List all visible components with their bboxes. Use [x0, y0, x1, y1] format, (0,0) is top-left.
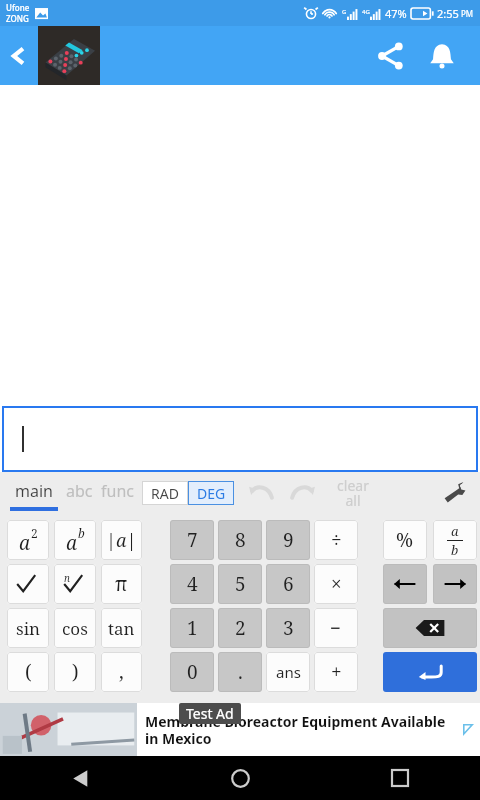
- staticText: 3: [283, 615, 294, 641]
- staticText: a: [66, 530, 78, 556]
- button[interactable]: cos: [54, 608, 96, 648]
- staticText: clear all: [337, 476, 369, 510]
- staticText: Ufone: [6, 2, 30, 13]
- button[interactable]: (: [7, 652, 49, 692]
- button[interactable]: Move cursor left: [383, 564, 427, 604]
- button[interactable]: Move cursor right: [433, 564, 477, 604]
- staticText: 2: [235, 615, 246, 641]
- staticText: G: [342, 8, 347, 16]
- button[interactable]: Undo: [244, 478, 278, 506]
- staticText: tan: [108, 617, 135, 640]
- button[interactable]: a: [7, 520, 49, 560]
- staticText: b: [78, 525, 85, 541]
- button[interactable]: 8: [218, 520, 262, 560]
- button[interactable]: RAD: [142, 481, 188, 505]
- button[interactable]: 0: [170, 652, 214, 692]
- button[interactable]: Redo: [286, 478, 320, 506]
- staticText: 5: [235, 571, 246, 597]
- staticText: (: [25, 659, 32, 685]
- button[interactable]: a: [54, 520, 96, 560]
- staticText: ÷: [331, 527, 342, 553]
- staticText: 4G: [362, 8, 370, 16]
- button[interactable]: π: [101, 564, 142, 604]
- button[interactable]: Home: [218, 756, 262, 800]
- button[interactable]: Notifications: [418, 32, 466, 80]
- staticText: RAD: [151, 484, 179, 503]
- button[interactable]: Recent apps: [378, 756, 422, 800]
- button[interactable]: |a|: [101, 520, 142, 560]
- staticText: 9: [283, 527, 294, 553]
- button[interactable]: 1: [170, 608, 214, 648]
- staticText: %: [396, 527, 414, 553]
- staticText: a: [19, 530, 31, 556]
- staticText: ,: [119, 659, 124, 685]
- staticText: main: [15, 480, 53, 502]
- button[interactable]: .: [218, 652, 262, 692]
- button[interactable]: DEG: [188, 481, 234, 505]
- staticText: 7: [187, 527, 198, 553]
- staticText: .: [238, 659, 243, 685]
- button[interactable]: abc: [66, 480, 93, 511]
- button[interactable]: main: [8, 480, 60, 511]
- staticText: a: [451, 522, 459, 540]
- staticText: 0: [187, 659, 198, 685]
- button[interactable]: 9: [266, 520, 310, 560]
- button[interactable]: ans: [266, 652, 310, 692]
- button[interactable]: 5: [218, 564, 262, 604]
- button[interactable]: ): [54, 652, 96, 692]
- button[interactable]: Back: [58, 756, 102, 800]
- staticText: π: [115, 571, 128, 597]
- button[interactable]: ÷: [314, 520, 358, 560]
- staticText: −: [330, 615, 342, 641]
- staticText: 47%: [385, 6, 407, 21]
- staticText: 1: [187, 615, 198, 641]
- staticText: Membrane Bioreactor Equipment Available …: [145, 712, 462, 748]
- staticText: 4: [187, 571, 198, 597]
- button[interactable]: 2: [218, 608, 262, 648]
- button[interactable]: Membrane Bioreactor Equipment Available …: [0, 703, 480, 756]
- button[interactable]: clear all: [330, 472, 376, 518]
- button[interactable]: %: [383, 520, 427, 560]
- button[interactable]: Calculator image: [38, 26, 100, 85]
- staticText: 8: [235, 527, 246, 553]
- staticText: b: [451, 541, 459, 559]
- button[interactable]: func: [101, 480, 134, 511]
- button[interactable]: Settings: [434, 475, 474, 509]
- staticText: +: [331, 659, 342, 685]
- button[interactable]: 6: [266, 564, 310, 604]
- button[interactable]: Back: [0, 26, 38, 85]
- staticText: ×: [331, 571, 342, 597]
- staticText: n: [64, 571, 70, 585]
- button[interactable]: Fraction a over b: [433, 520, 477, 560]
- button[interactable]: 7: [170, 520, 214, 560]
- staticText: ans: [276, 662, 301, 682]
- button[interactable]: Enter: [383, 652, 477, 692]
- button[interactable]: sin: [7, 608, 49, 648]
- staticText: PM: [461, 8, 474, 19]
- button[interactable]: n: [54, 564, 96, 604]
- button[interactable]: [7, 564, 49, 604]
- staticText: sin: [16, 617, 41, 640]
- button[interactable]: Share: [367, 32, 415, 80]
- button[interactable]: −: [314, 608, 358, 648]
- button[interactable]: +: [314, 652, 358, 692]
- button[interactable]: ,: [101, 652, 142, 692]
- staticText: Test Ad: [186, 704, 234, 723]
- staticText: 2: [31, 525, 38, 541]
- button[interactable]: tan: [101, 608, 142, 648]
- staticText: |a|: [106, 528, 137, 553]
- staticText: DEG: [197, 484, 226, 503]
- staticText: cos: [62, 617, 88, 640]
- staticText: ZONG: [6, 13, 29, 24]
- button[interactable]: 3: [266, 608, 310, 648]
- staticText: ): [72, 659, 79, 685]
- button[interactable]: Backspace: [383, 608, 477, 648]
- button[interactable]: 4: [170, 564, 214, 604]
- button[interactable]: [2, 406, 478, 472]
- staticText: 2:55: [437, 6, 459, 21]
- button[interactable]: ×: [314, 564, 358, 604]
- staticText: 6: [283, 571, 294, 597]
